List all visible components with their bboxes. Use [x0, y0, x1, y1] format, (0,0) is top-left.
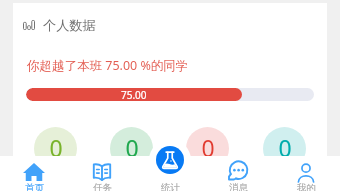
button[interactable]: 我的 — [272, 156, 340, 191]
staticText: 统计 — [161, 182, 180, 191]
staticText: 个人数据 — [43, 17, 96, 34]
staticText: 你超越了本班 75.00 %的同学 — [27, 57, 189, 74]
button[interactable]: 消息 — [204, 156, 272, 191]
button[interactable]: 任务 — [68, 156, 136, 191]
staticText: 0 — [49, 132, 63, 163]
staticText: 任务 — [93, 182, 112, 191]
staticText: 0 — [125, 132, 139, 163]
button[interactable]: 首页 — [0, 156, 68, 191]
staticText: 消息 — [229, 182, 248, 191]
staticText: 0 — [201, 132, 215, 163]
staticText: 75.00 — [121, 88, 147, 101]
button[interactable]: 统计 — [136, 156, 204, 191]
staticText: 0 — [278, 132, 292, 163]
button[interactable]: 统计 — [149, 139, 191, 181]
staticText: 首页 — [25, 182, 44, 191]
staticText: 我的 — [297, 182, 316, 191]
